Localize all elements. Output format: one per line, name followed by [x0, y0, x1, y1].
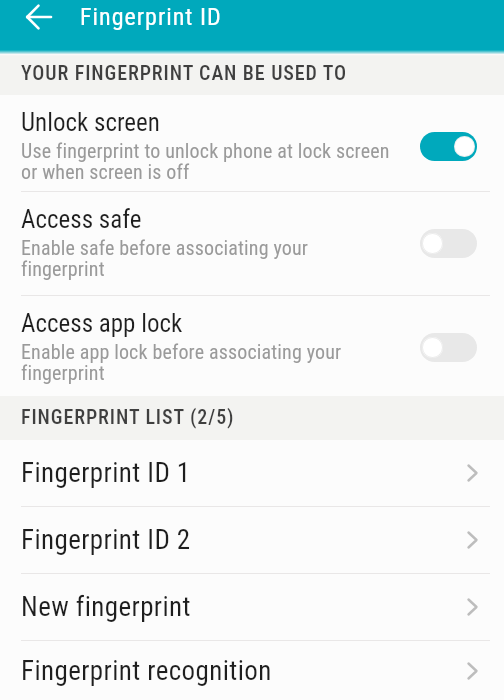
staticText: Fingerprint ID 1 — [21, 457, 191, 489]
button[interactable]: Unlock screen — [0, 95, 504, 191]
staticText: Enable app lock before associating your … — [21, 340, 342, 385]
staticText: New fingerprint — [21, 591, 191, 623]
button[interactable]: New fingerprint — [0, 574, 504, 640]
button[interactable] — [0, 0, 78, 34]
button[interactable]: Fingerprint ID 1 — [0, 440, 504, 506]
button[interactable]: Fingerprint recognition — [0, 641, 504, 700]
staticText: FINGERPRINT LIST (2/5) — [21, 405, 235, 428]
button[interactable]: Access app lock — [0, 296, 504, 396]
staticText: YOUR FINGERPRINT CAN BE USED TO — [21, 61, 348, 84]
staticText: Fingerprint ID — [80, 3, 222, 31]
staticText: Access app lock — [21, 309, 183, 338]
staticText: Fingerprint recognition — [21, 655, 272, 687]
button[interactable] — [420, 229, 477, 258]
button[interactable]: Access safe — [0, 192, 504, 295]
staticText: Access safe — [21, 205, 142, 234]
button[interactable] — [420, 132, 477, 161]
button[interactable] — [420, 333, 477, 362]
staticText: Fingerprint ID 2 — [21, 524, 191, 556]
staticText: Enable safe before associating your fing… — [21, 236, 309, 281]
staticText: Use fingerprint to unlock phone at lock … — [21, 139, 390, 184]
button[interactable]: Fingerprint ID 2 — [0, 507, 504, 573]
staticText: Unlock screen — [21, 108, 160, 137]
